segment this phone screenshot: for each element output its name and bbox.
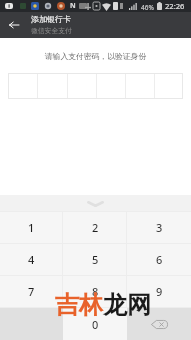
- staticText: 吉林: [55, 290, 103, 320]
- staticText: 6: [156, 252, 163, 267]
- button[interactable]: [126, 73, 154, 99]
- staticText: 龙网: [103, 290, 151, 320]
- staticText: 22:26: [165, 1, 185, 11]
- staticText: 2: [92, 220, 99, 235]
- button[interactable]: [38, 73, 67, 99]
- staticText: 4: [28, 252, 35, 267]
- staticText: 请输入支付密码，以验证身份: [0, 51, 191, 61]
- staticText: 46%: [141, 3, 154, 12]
- staticText: 微信安全支付: [31, 26, 72, 35]
- button[interactable]: 7: [0, 276, 63, 307]
- button[interactable]: [8, 73, 37, 99]
- staticText: N: [70, 1, 76, 11]
- button[interactable]: 1: [0, 212, 63, 243]
- button[interactable]: [155, 73, 183, 99]
- staticText: 添加银行卡: [31, 14, 71, 24]
- button[interactable]: 8: [63, 276, 127, 307]
- button[interactable]: Back: [4, 15, 24, 35]
- button[interactable]: Delete: [127, 308, 191, 340]
- button[interactable]: 0: [63, 308, 127, 340]
- staticText: 9: [156, 284, 163, 299]
- button[interactable]: 3: [127, 212, 191, 243]
- staticText: 3: [156, 220, 163, 235]
- staticText: 1: [28, 220, 35, 235]
- button[interactable]: 5: [63, 244, 127, 275]
- staticText: 8: [92, 284, 99, 299]
- staticText: 0: [92, 317, 99, 332]
- staticText: 5: [92, 252, 99, 267]
- staticText: 7: [28, 284, 35, 299]
- button[interactable]: 2: [63, 212, 127, 243]
- button[interactable]: [97, 73, 125, 99]
- button[interactable]: 9: [127, 276, 191, 307]
- button[interactable]: 4: [0, 244, 63, 275]
- button[interactable]: [68, 73, 96, 99]
- button[interactable]: 6: [127, 244, 191, 275]
- button[interactable]: [0, 308, 63, 340]
